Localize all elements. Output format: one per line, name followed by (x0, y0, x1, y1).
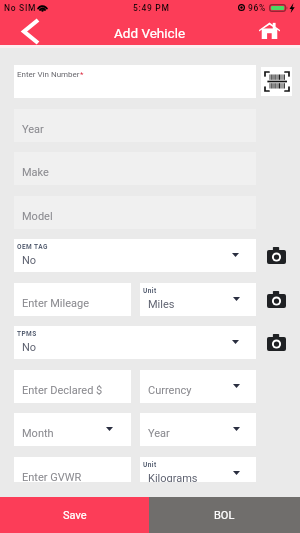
button[interactable]: TPMS (14, 326, 256, 359)
button[interactable]: Enter Mileage (14, 283, 131, 316)
button[interactable]: Save (0, 497, 149, 533)
staticText: Year (22, 123, 44, 136)
button[interactable]: Year (14, 109, 256, 142)
staticText: Enter Declared $ (22, 384, 103, 397)
button[interactable]: Take photo (264, 330, 288, 354)
staticText: Enter GVWR (22, 471, 82, 482)
staticText: 96% (248, 3, 267, 13)
staticText: Add Vehicle (114, 25, 186, 41)
staticText: Make (22, 166, 49, 179)
button[interactable]: Year (140, 413, 256, 446)
staticText: Kilograms (148, 472, 198, 482)
button[interactable]: Unit (140, 283, 256, 316)
button[interactable]: BOL (149, 497, 300, 533)
button[interactable]: Scan barcode (261, 67, 292, 96)
staticText: Model (22, 210, 53, 223)
staticText: Unit (143, 287, 157, 295)
staticText: Month (22, 427, 54, 440)
staticText: No (22, 254, 37, 267)
button[interactable]: OEM TAG (14, 239, 256, 272)
button[interactable]: Make (14, 152, 256, 185)
button[interactable]: Currency (140, 370, 256, 403)
staticText: Currency (148, 384, 192, 397)
staticText: No (22, 341, 37, 354)
button[interactable]: Take photo (264, 287, 288, 311)
staticText: TPMS (17, 330, 37, 338)
button[interactable]: Home (253, 18, 285, 42)
staticText: Save (63, 509, 87, 522)
button[interactable]: Enter Vin Number (14, 65, 256, 98)
staticText: Year (148, 427, 170, 440)
staticText: Miles (148, 298, 175, 311)
button[interactable]: Enter GVWR (14, 457, 131, 482)
staticText: Unit (143, 461, 157, 469)
button[interactable]: Unit (140, 457, 256, 482)
staticText: BOL (214, 509, 235, 522)
button[interactable]: Back (12, 17, 50, 45)
button[interactable]: Model (14, 196, 256, 229)
button[interactable]: Month (14, 413, 131, 446)
staticText: OEM TAG (17, 243, 48, 251)
button[interactable]: Enter Declared $ (14, 370, 131, 403)
button[interactable]: Take photo (264, 243, 288, 267)
staticText: Enter Mileage (22, 297, 89, 310)
staticText: * (80, 70, 84, 79)
staticText: 5:49 PM (133, 3, 170, 13)
staticText: Enter Vin Number (17, 70, 80, 79)
staticText: No SIM (4, 3, 37, 13)
